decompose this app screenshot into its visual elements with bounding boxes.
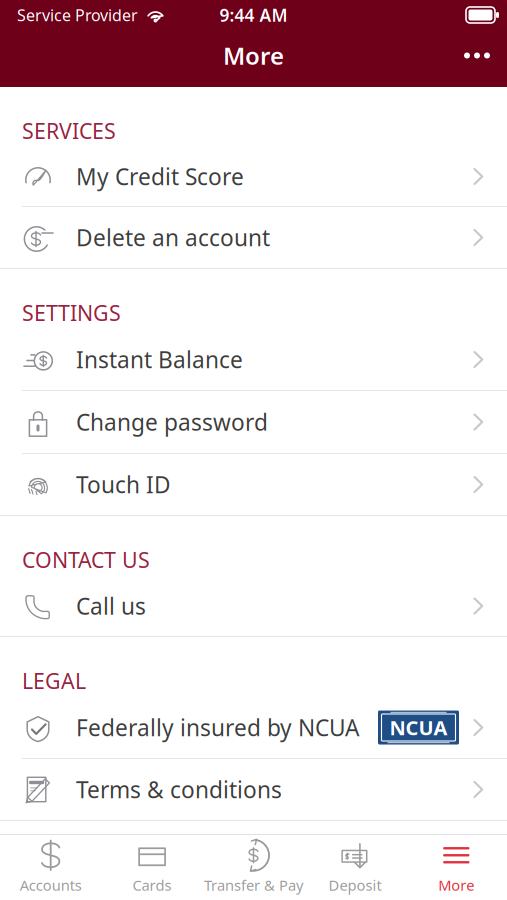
staticText: My Credit Score	[76, 161, 244, 191]
staticText: Deposit	[328, 875, 381, 895]
button[interactable]: Federally insured by NCUA	[0, 697, 507, 758]
staticText: Delete an account	[76, 222, 270, 252]
button[interactable]: Terms & conditions	[0, 759, 507, 820]
button[interactable]: Instant Balance	[0, 329, 507, 390]
staticText: Cards	[133, 875, 172, 895]
button[interactable]: Transfer & Pay	[203, 834, 304, 900]
staticText: SETTINGS	[22, 299, 121, 327]
button[interactable]: Change password	[0, 391, 507, 453]
staticText: Instant Balance	[76, 344, 243, 374]
staticText: Terms & conditions	[76, 774, 282, 804]
staticText: 9:44 AM	[219, 3, 287, 26]
button[interactable]: More options	[447, 33, 507, 77]
staticText: CONTACT US	[22, 546, 150, 574]
staticText: More	[438, 875, 474, 895]
staticText: Touch ID	[76, 469, 171, 499]
staticText: Call us	[76, 591, 146, 621]
staticText: More	[223, 40, 284, 71]
staticText: SERVICES	[22, 117, 116, 145]
button[interactable]: Accounts	[0, 834, 101, 900]
staticText: LEGAL	[22, 667, 86, 695]
button[interactable]: Touch ID	[0, 454, 507, 515]
staticText: Transfer & Pay	[204, 875, 303, 895]
staticText: Accounts	[20, 875, 82, 895]
staticText: Change password	[76, 407, 268, 437]
button[interactable]: Call us	[0, 576, 507, 636]
button[interactable]: More	[406, 834, 507, 900]
button[interactable]: Cards	[101, 834, 203, 900]
button[interactable]: My Credit Score	[0, 147, 507, 206]
staticText: Federally insured by NCUA	[76, 712, 359, 742]
button[interactable]: Delete an account	[0, 207, 507, 268]
staticText: NCUA	[389, 714, 447, 741]
staticText: Service Provider	[17, 4, 138, 26]
button[interactable]: Deposit	[304, 834, 406, 900]
